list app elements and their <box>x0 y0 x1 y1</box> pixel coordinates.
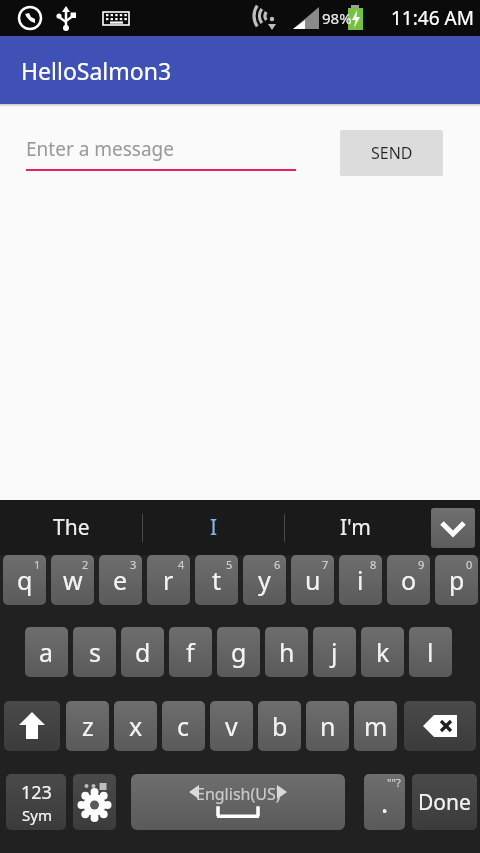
staticText: m <box>364 709 388 743</box>
button[interactable]: p <box>435 555 478 605</box>
button[interactable]: d <box>121 627 164 677</box>
button[interactable]: x <box>114 701 157 751</box>
staticText: w <box>63 563 83 597</box>
staticText: Sym <box>22 805 52 825</box>
staticText: l <box>427 635 434 669</box>
staticText: 1 <box>34 557 41 572</box>
staticText: f <box>186 635 195 669</box>
staticText: 5 <box>226 557 233 572</box>
button[interactable]: English(US) <box>131 774 345 830</box>
staticText: 7 <box>322 557 329 572</box>
staticText: 9 <box>418 557 425 572</box>
button[interactable]: b <box>258 701 301 751</box>
button[interactable]: Shift <box>4 701 60 751</box>
staticText: 8 <box>370 557 377 572</box>
button[interactable]: j <box>313 627 356 677</box>
button[interactable]: l <box>409 627 452 677</box>
button[interactable]: 123 <box>6 774 66 830</box>
button[interactable]: o <box>387 555 430 605</box>
staticText: SEND <box>371 142 413 164</box>
staticText: d <box>135 635 151 669</box>
button[interactable]: r <box>147 555 190 605</box>
staticText: 6 <box>274 557 281 572</box>
button[interactable]: Done <box>412 774 477 830</box>
staticText: I'm <box>340 513 371 542</box>
staticText: v <box>225 709 238 743</box>
staticText: z <box>82 709 94 743</box>
button[interactable]: Backspace <box>404 701 476 751</box>
staticText: 98% <box>322 8 352 28</box>
staticText: Enter a message <box>26 136 175 162</box>
staticText: I <box>210 513 218 542</box>
staticText: 3 <box>130 557 137 572</box>
staticText: e <box>113 563 128 597</box>
button[interactable]: c <box>162 701 205 751</box>
button[interactable]: q <box>3 555 46 605</box>
button[interactable]: y <box>243 555 286 605</box>
button[interactable]: SEND <box>340 130 443 176</box>
staticText: . <box>381 784 389 821</box>
button[interactable]: u <box>291 555 334 605</box>
staticText: q <box>17 563 33 597</box>
button[interactable]: e <box>99 555 142 605</box>
button[interactable]: The <box>0 500 142 555</box>
staticText: a <box>39 635 54 669</box>
button[interactable]: a <box>25 627 68 677</box>
staticText: 0 <box>466 557 473 572</box>
staticText: r <box>163 563 174 597</box>
button[interactable]: m <box>354 701 397 751</box>
staticText: 11:46 AM <box>391 5 474 31</box>
staticText: u <box>305 563 321 597</box>
staticText: English(US) <box>196 783 281 805</box>
button[interactable]: z <box>66 701 109 751</box>
staticText: g <box>231 635 247 669</box>
button[interactable]: t <box>195 555 238 605</box>
button[interactable]: s <box>73 627 116 677</box>
button[interactable]: w <box>51 555 94 605</box>
button[interactable]: Settings <box>73 774 116 830</box>
button[interactable]: I'm <box>285 500 426 555</box>
staticText: n <box>320 709 336 743</box>
button[interactable]: f <box>169 627 212 677</box>
staticText: y <box>258 563 271 597</box>
staticText: t <box>212 563 222 597</box>
button[interactable]: Period <box>364 774 405 830</box>
button[interactable]: I <box>143 500 284 555</box>
button[interactable]: i <box>339 555 382 605</box>
staticText: b <box>272 709 288 743</box>
staticText: 4 <box>178 557 185 572</box>
button[interactable]: Hide keyboard <box>431 508 475 548</box>
staticText: c <box>177 709 190 743</box>
staticText: ""? <box>387 775 401 790</box>
staticText: o <box>401 563 417 597</box>
staticText: k <box>376 635 390 669</box>
staticText: s <box>89 635 101 669</box>
staticText: i <box>357 563 364 597</box>
staticText: j <box>331 635 338 669</box>
button[interactable]: k <box>361 627 404 677</box>
staticText: HelloSalmon3 <box>21 55 172 86</box>
button[interactable]: v <box>210 701 253 751</box>
staticText: 123 <box>21 780 52 805</box>
button[interactable]: Enter a message <box>26 136 296 171</box>
staticText: 2 <box>82 557 89 572</box>
staticText: x <box>129 709 143 743</box>
button[interactable]: g <box>217 627 260 677</box>
staticText: h <box>279 635 295 669</box>
button[interactable]: h <box>265 627 308 677</box>
staticText: p <box>449 563 465 597</box>
button[interactable]: n <box>306 701 349 751</box>
staticText: Done <box>418 788 471 817</box>
staticText: The <box>53 513 90 542</box>
